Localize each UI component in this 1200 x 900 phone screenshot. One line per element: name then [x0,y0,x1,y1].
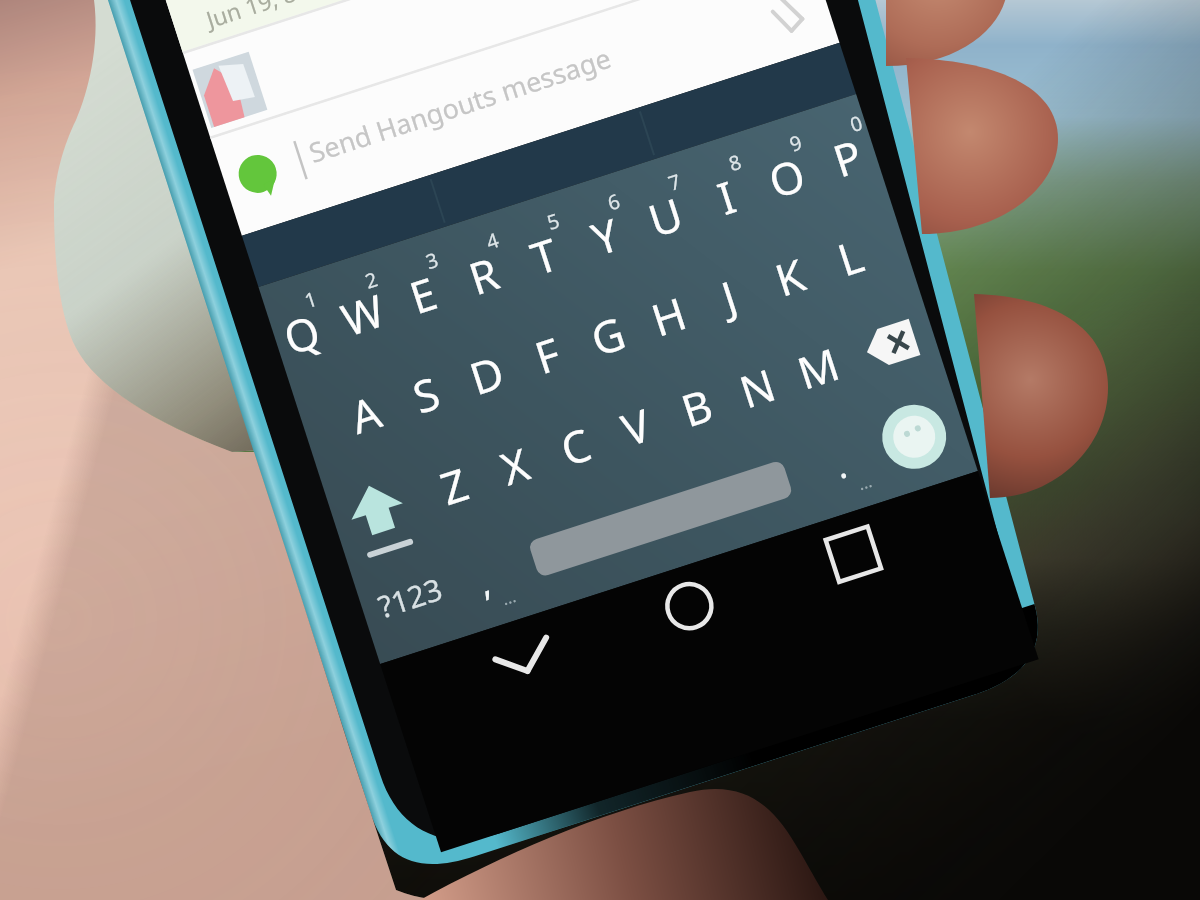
button[interactable] [0,0,1200,900]
